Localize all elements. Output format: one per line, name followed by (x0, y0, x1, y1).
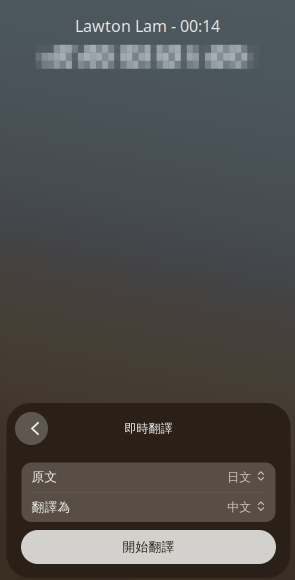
staticText: 翻譯為 (31, 499, 70, 515)
staticText: 開始翻譯 (122, 539, 174, 555)
staticText: 日文 (227, 470, 251, 485)
button[interactable]: 開始翻譯 (21, 530, 276, 564)
button[interactable]: 翻譯為 (21, 493, 275, 522)
button[interactable]: 原文 (21, 462, 275, 492)
staticText: Lawton Lam - 00:14 (75, 15, 220, 37)
staticText: 中文 (227, 500, 251, 515)
button[interactable]: Back (15, 412, 48, 445)
staticText: 原文 (31, 469, 57, 485)
staticText: 即時翻譯 (124, 421, 172, 436)
